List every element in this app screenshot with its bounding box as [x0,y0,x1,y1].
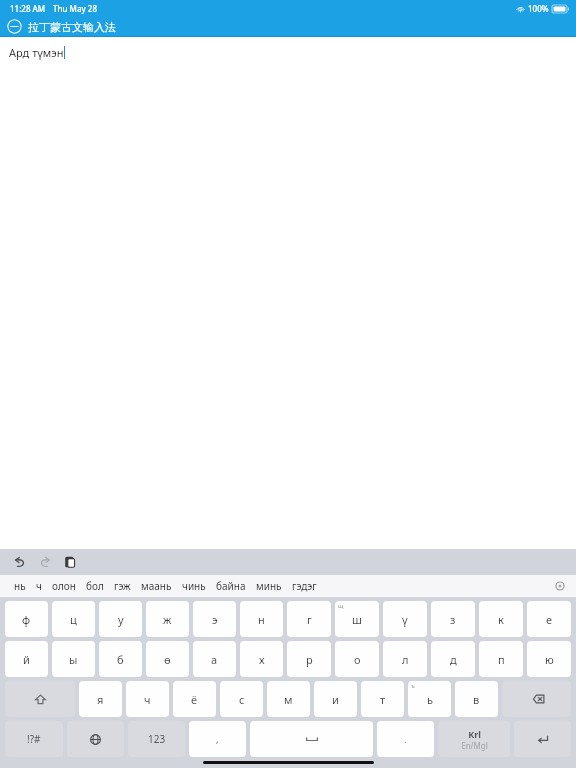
button[interactable]: ж [146,601,189,637]
staticText: ч [144,692,151,707]
staticText: Krl [468,728,481,740]
staticText: а [211,652,218,667]
button[interactable]: минь [251,579,287,593]
staticText: байна [216,579,246,593]
staticText: д [450,652,457,667]
staticText: гэж [114,579,131,593]
button[interactable]: байна [211,579,251,593]
staticText: ё [191,692,198,707]
button[interactable]: Backspace [502,681,571,717]
button[interactable]: ш [335,601,379,637]
button[interactable]: л [383,641,427,677]
staticText: ө [164,652,171,667]
staticText: ы [69,652,78,667]
button[interactable]: н [240,601,283,637]
button[interactable]: е [527,601,571,637]
staticText: бол [86,579,104,593]
staticText: En/Mgl [461,740,488,751]
staticText: ю [545,652,554,667]
button[interactable]: App logo [7,19,22,34]
button[interactable]: р [287,641,331,677]
staticText: я [97,692,104,707]
button[interactable]: Clipboard [61,553,79,571]
button[interactable]: ь [408,681,451,717]
button[interactable]: о [335,641,379,677]
button[interactable]: т [361,681,404,717]
button[interactable]: й [5,641,48,677]
button[interactable]: у [99,601,142,637]
staticText: ц [70,612,77,627]
button[interactable]: ч [126,681,169,717]
staticText: т [380,692,386,707]
staticText: ъ [411,682,415,690]
staticText: олон [52,579,76,593]
button[interactable]: я [79,681,122,717]
button[interactable]: бол [81,579,109,593]
button[interactable]: с [220,681,263,717]
button[interactable]: маань [136,579,177,593]
button[interactable]: г [287,601,331,637]
staticText: е [546,612,553,627]
button[interactable]: ц [52,601,95,637]
button[interactable]: и [314,681,357,717]
button[interactable]: чинь [177,579,211,593]
button[interactable]: к [479,601,523,637]
button[interactable]: х [240,641,283,677]
staticText: з [450,612,456,627]
button[interactable]: ү [383,601,427,637]
staticText: у [118,612,124,627]
button[interactable]: а [193,641,236,677]
staticText: ү [402,612,408,627]
staticText: с [239,692,245,707]
button[interactable]: Enter [514,721,571,757]
staticText: л [402,652,409,667]
button[interactable]: олон [47,579,81,593]
staticText: гэдэг [292,579,317,593]
staticText: маань [141,579,172,593]
button[interactable]: з [431,601,475,637]
button[interactable]: ы [52,641,95,677]
staticText: н [258,612,265,627]
staticText: и [332,692,339,707]
button[interactable]: Redo [36,553,54,571]
button[interactable]: ё [173,681,216,717]
button[interactable]: ф [5,601,48,637]
button[interactable]: Switch keyboard [67,721,124,757]
staticText: ф [22,612,31,627]
button[interactable]: м [267,681,310,717]
button[interactable]: Undo [10,553,28,571]
staticText: , [216,733,219,745]
button[interactable]: , [189,721,246,757]
staticText: 11:28 AM [10,3,46,14]
staticText: э [212,612,218,627]
button[interactable]: Settings [553,579,567,593]
button[interactable]: . [377,721,434,757]
button[interactable]: в [455,681,498,717]
staticText: чинь [182,579,206,593]
button[interactable]: д [431,641,475,677]
button[interactable]: гэж [109,579,136,593]
button[interactable]: Shift [5,681,75,717]
button[interactable]: э [193,601,236,637]
staticText: м [284,692,293,707]
staticText: р [306,652,313,667]
staticText: !?# [27,732,41,746]
button[interactable]: Krl [438,721,510,757]
staticText: б [117,652,124,667]
staticText: 100% [528,3,549,14]
button[interactable]: гэдэг [287,579,322,593]
staticText: Ард түмэн [9,45,64,60]
staticText: минь [256,579,282,593]
button[interactable]: п [479,641,523,677]
button[interactable]: Space [250,721,373,757]
staticText: ч [36,579,42,593]
button[interactable]: б [99,641,142,677]
button[interactable]: ч [31,579,47,593]
button[interactable]: ө [146,641,189,677]
button[interactable]: ю [527,641,571,677]
button[interactable]: нь [9,579,31,593]
button[interactable]: 123 [128,721,185,757]
staticText: к [498,612,504,627]
button[interactable]: !?# [5,721,63,757]
staticText: 拉丁蒙古文输入法 [28,20,116,34]
